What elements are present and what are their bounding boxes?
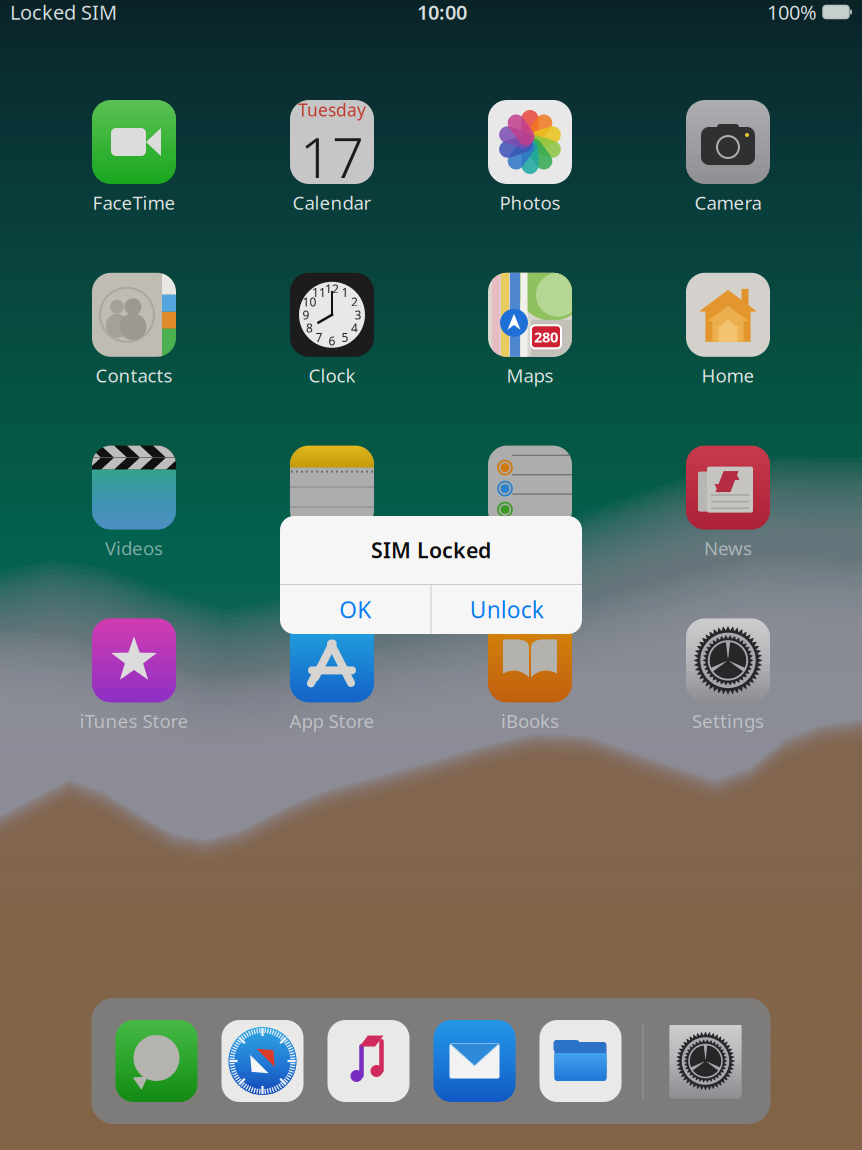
button[interactable]: iTunes Store xyxy=(49,618,219,733)
staticText: Home xyxy=(701,363,754,388)
button[interactable]: Files xyxy=(539,1020,621,1102)
staticText: 100% xyxy=(767,0,817,25)
staticText: Clock xyxy=(308,363,355,388)
button[interactable]: Tuesday xyxy=(247,100,417,215)
button[interactable]: FaceTime xyxy=(49,100,219,215)
staticText: FaceTime xyxy=(92,190,175,215)
button[interactable]: Settings xyxy=(664,1020,746,1102)
staticText: Unlock xyxy=(470,594,544,624)
staticText: 2 xyxy=(351,294,358,310)
staticText: iTunes Store xyxy=(79,708,188,733)
staticText: 12 xyxy=(325,281,339,297)
button[interactable]: Videos xyxy=(49,446,219,560)
staticText: Reminders xyxy=(482,536,578,560)
button[interactable]: Camera xyxy=(643,100,813,215)
button[interactable]: Music xyxy=(327,1020,409,1102)
staticText: 10 xyxy=(302,294,316,310)
button[interactable]: Notes xyxy=(247,446,417,560)
button[interactable]: Photos xyxy=(445,100,615,215)
button[interactable]: Contacts xyxy=(49,273,219,388)
button[interactable]: News xyxy=(643,446,813,560)
button[interactable]: App Store xyxy=(247,618,417,733)
button[interactable]: 12 xyxy=(247,273,417,388)
staticText: 6 xyxy=(328,333,335,349)
staticText: Maps xyxy=(506,363,553,388)
staticText: Photos xyxy=(499,190,560,215)
staticText: 8 xyxy=(306,320,313,336)
staticText: App Store xyxy=(289,708,374,733)
button[interactable]: Safari xyxy=(221,1020,303,1102)
button[interactable]: Home xyxy=(643,273,813,388)
staticText: Calendar xyxy=(292,190,371,215)
button[interactable]: Mail xyxy=(433,1020,515,1102)
button[interactable]: Reminders xyxy=(445,446,615,560)
staticText: 9 xyxy=(302,307,309,323)
staticText: 3 xyxy=(354,307,361,323)
staticText: Settings xyxy=(692,708,764,733)
staticText: Videos xyxy=(105,536,163,560)
button[interactable]: Settings xyxy=(643,618,813,733)
staticText: 10:00 xyxy=(417,0,467,25)
staticText: 280 xyxy=(534,327,558,347)
staticText: 4 xyxy=(351,320,358,336)
staticText: Tuesday xyxy=(298,98,366,121)
staticText: News xyxy=(704,536,752,560)
staticText: 11 xyxy=(312,284,326,300)
button[interactable]: 280 xyxy=(445,273,615,388)
staticText: Contacts xyxy=(95,363,172,388)
staticText: iBooks xyxy=(501,708,559,733)
staticText: 1 xyxy=(341,284,348,300)
button[interactable]: OK xyxy=(280,585,430,634)
staticText: 7 xyxy=(315,329,322,345)
button[interactable]: Unlock xyxy=(431,585,582,634)
staticText: 17 xyxy=(300,119,364,194)
button[interactable]: iBooks xyxy=(445,618,615,733)
staticText: SIM Locked xyxy=(371,536,491,564)
staticText: Locked SIM xyxy=(10,0,117,25)
staticText: OK xyxy=(339,594,371,624)
staticText: 5 xyxy=(341,329,348,345)
button[interactable]: Messages xyxy=(115,1020,197,1102)
staticText: Camera xyxy=(694,190,761,215)
